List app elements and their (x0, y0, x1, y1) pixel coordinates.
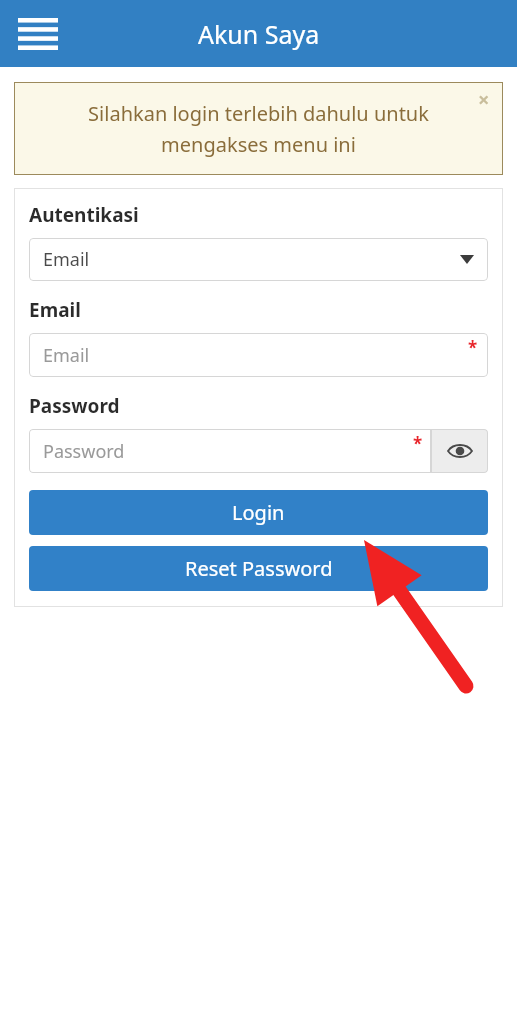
staticText: Silahkan login terlebih dahulu untuk men… (54, 100, 463, 157)
button[interactable]: Dismiss alert (469, 84, 499, 114)
staticText: Email (29, 297, 81, 323)
staticText: Autentikasi (29, 202, 139, 228)
button[interactable]: Password (29, 429, 431, 473)
button[interactable]: Login (29, 490, 488, 535)
staticText: Akun Saya (198, 17, 320, 51)
staticText: Email (43, 247, 90, 272)
staticText: × (478, 86, 490, 113)
button[interactable]: Open navigation menu (12, 8, 64, 60)
staticText: Reset Password (185, 555, 333, 582)
staticText: * (468, 336, 478, 359)
staticText: Password (43, 439, 125, 464)
button[interactable]: Email (29, 238, 488, 281)
button[interactable]: Reset Password (29, 546, 488, 591)
staticText: Email (43, 343, 90, 368)
staticText: Password (29, 393, 120, 419)
staticText: Login (232, 499, 285, 526)
staticText: * (413, 432, 423, 455)
button[interactable]: Show password (431, 429, 488, 473)
button[interactable]: Email (29, 333, 488, 377)
